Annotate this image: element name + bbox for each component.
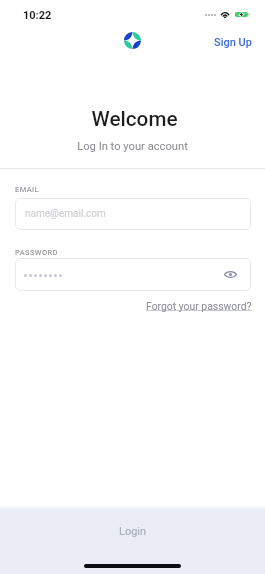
button[interactable]: Forgot your password?: [146, 300, 252, 312]
staticText: name@email.com: [25, 208, 106, 220]
button[interactable]: Sign Up: [214, 36, 252, 49]
staticText: Welcome: [2, 107, 265, 131]
staticText: Login: [119, 525, 147, 538]
staticText: Forgot your password?: [146, 300, 252, 312]
button[interactable]: name@email.com: [15, 198, 251, 230]
staticText: 10:22: [23, 9, 52, 22]
button[interactable]: Login: [0, 510, 265, 574]
button[interactable]: Show password: [224, 271, 237, 278]
staticText: PASSWORD: [15, 248, 58, 257]
staticText: Sign Up: [214, 36, 252, 49]
staticText: Log In to your account: [0, 140, 265, 153]
staticText: EMAIL: [15, 185, 40, 194]
button[interactable]: Show password: [15, 258, 251, 291]
